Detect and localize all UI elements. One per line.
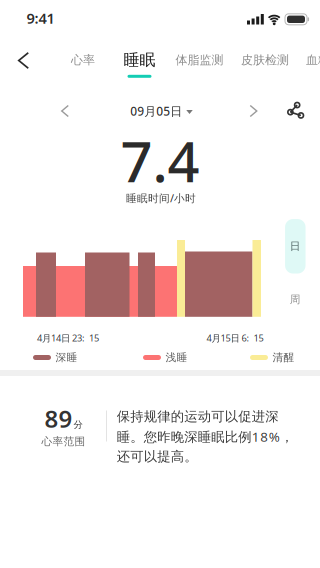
staticText: 清醒 — [272, 351, 294, 364]
button[interactable]: 周 — [284, 287, 307, 312]
button[interactable]: 皮肤检测 — [241, 47, 289, 73]
button[interactable]: 日 — [285, 219, 306, 274]
staticText: 血糖 — [306, 53, 320, 67]
staticText: 心率 — [71, 53, 95, 67]
button[interactable]: 09月05日 — [130, 103, 193, 119]
staticText: 09月05日 — [130, 103, 182, 119]
button[interactable]: 心率 — [71, 47, 95, 73]
button[interactable]: Previous day — [54, 97, 76, 124]
staticText: 还可以提高。 — [117, 448, 197, 465]
staticText: 周 — [290, 293, 301, 306]
button[interactable]: 睡眠 — [123, 50, 155, 78]
staticText: 睡眠 — [123, 50, 155, 70]
staticText: 4月15日 6: 15 — [206, 332, 263, 344]
staticText: 9:41 — [26, 8, 54, 28]
staticText: 浅睡 — [165, 351, 187, 364]
button[interactable]: 体脂监测 — [175, 47, 223, 73]
staticText: 89 — [44, 403, 72, 434]
staticText: 保持规律的运动可以促进深 — [117, 408, 278, 425]
staticText: 皮肤检测 — [241, 53, 289, 67]
staticText: 心率范围 — [41, 435, 85, 448]
staticText: 体脂监测 — [175, 53, 223, 67]
staticText: 分 — [73, 419, 82, 430]
staticText: 7.4 — [120, 123, 199, 198]
staticText: 深睡 — [55, 351, 77, 364]
button[interactable]: Share — [281, 96, 310, 125]
button[interactable]: Back — [9, 43, 38, 78]
staticText: 日 — [290, 240, 301, 253]
staticText: 4月14日 23: 15 — [37, 332, 99, 344]
button[interactable]: 血糖 — [306, 47, 320, 73]
staticText: 睡眠时间/小时 — [126, 191, 196, 205]
button[interactable]: Next day — [242, 97, 265, 124]
staticText: 睡。您昨晚深睡眠比例18%， — [117, 428, 293, 445]
